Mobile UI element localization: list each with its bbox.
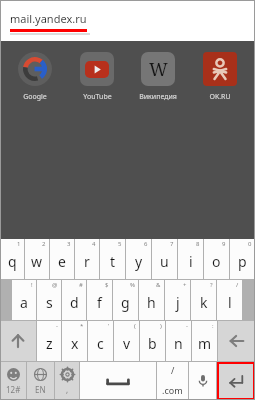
- staticText: 2: [42, 240, 46, 248]
- staticText: s: [46, 293, 53, 312]
- staticText: w: [31, 252, 43, 271]
- button[interactable]: mail.yandex.ru: [0, 0, 255, 41]
- button[interactable]: 9: [204, 239, 229, 279]
- staticText: /: [236, 281, 239, 289]
- staticText: f: [97, 293, 102, 312]
- staticText: 0: [248, 240, 252, 248]
- button[interactable]: 3: [50, 239, 74, 279]
- staticText: 1: [17, 240, 21, 248]
- staticText: 5: [118, 240, 122, 248]
- staticText: !: [31, 281, 33, 289]
- staticText: ): [160, 322, 162, 330]
- staticText: Википедия: [139, 92, 177, 102]
- staticText: (: [134, 322, 136, 330]
- staticText: h: [147, 293, 156, 312]
- staticText: .com: [162, 384, 183, 396]
- button[interactable]: /: [217, 280, 242, 320]
- button[interactable]: ': [88, 321, 113, 361]
- other: Википедия: [141, 52, 175, 86]
- button[interactable]: Space: [80, 362, 156, 400]
- other: Google: [18, 52, 52, 86]
- staticText: Google: [23, 92, 47, 102]
- button[interactable]: $: [87, 280, 112, 320]
- staticText: p: [238, 252, 247, 271]
- button[interactable]: Enter: [219, 364, 253, 398]
- staticText: $: [105, 281, 109, 289]
- button[interactable]: 0: [230, 239, 255, 279]
- button[interactable]: Википедия: [131, 52, 185, 102]
- staticText: -: [56, 322, 58, 330]
- button[interactable]: YouTube: [70, 52, 124, 102]
- staticText: ,: [66, 384, 69, 395]
- button[interactable]: Voice input: [189, 362, 216, 400]
- staticText: &: [156, 281, 161, 289]
- staticText: y: [135, 252, 143, 271]
- button[interactable]: 4: [75, 239, 99, 279]
- staticText: OK.RU: [209, 92, 231, 102]
- staticText: r: [84, 252, 90, 271]
- button[interactable]: *: [62, 321, 87, 361]
- button[interactable]: (: [114, 321, 139, 361]
- staticText: b: [148, 334, 157, 353]
- button[interactable]: +: [165, 280, 190, 320]
- staticText: -: [186, 322, 188, 330]
- staticText: x: [71, 334, 79, 353]
- button[interactable]: OK.RU: [193, 52, 247, 102]
- staticText: EN: [35, 384, 46, 395]
- staticText: ': [108, 322, 110, 330]
- button[interactable]: ): [140, 321, 165, 361]
- staticText: *: [80, 322, 84, 330]
- other: YouTube: [80, 52, 114, 86]
- button[interactable]: !: [12, 280, 36, 320]
- button[interactable]: 2: [25, 239, 49, 279]
- button[interactable]: 1: [0, 239, 24, 279]
- other: OK.RU: [203, 52, 237, 86]
- staticText: ?: [210, 281, 213, 289]
- staticText: 8: [196, 240, 200, 248]
- button[interactable]: &: [139, 280, 164, 320]
- button[interactable]: Settings: [55, 362, 79, 400]
- button[interactable]: 7: [152, 239, 177, 279]
- button[interactable]: -: [166, 321, 191, 361]
- staticText: t: [110, 252, 116, 271]
- staticText: +: [183, 281, 187, 289]
- staticText: W: [149, 57, 168, 82]
- staticText: YouTube: [83, 92, 112, 102]
- button[interactable]: -: [37, 321, 61, 361]
- staticText: mail.yandex.ru: [10, 11, 87, 26]
- button[interactable]: ?: [191, 280, 216, 320]
- staticText: 12#: [6, 384, 21, 395]
- button[interactable]: 8: [178, 239, 203, 279]
- staticText: g: [121, 293, 130, 312]
- staticText: e: [58, 252, 66, 271]
- staticText: i: [189, 252, 193, 271]
- button[interactable]: Emoji: [0, 362, 26, 400]
- staticText: /: [171, 364, 175, 376]
- staticText: n: [174, 334, 183, 353]
- staticText: 6: [144, 240, 148, 248]
- staticText: #: [79, 281, 83, 289]
- button[interactable]: Shift: [0, 321, 36, 361]
- button[interactable]: Language: [27, 362, 54, 400]
- button[interactable]: @: [37, 280, 61, 320]
- staticText: @: [52, 281, 58, 289]
- staticText: 7: [170, 240, 174, 248]
- button[interactable]: %: [113, 280, 138, 320]
- button[interactable]: :: [192, 321, 217, 361]
- button[interactable]: /: [157, 362, 188, 400]
- button[interactable]: 5: [100, 239, 125, 279]
- staticText: j: [176, 293, 180, 312]
- staticText: q: [8, 252, 17, 271]
- button[interactable]: 6: [126, 239, 151, 279]
- button[interactable]: Backspace: [218, 321, 255, 361]
- staticText: u: [160, 252, 169, 271]
- staticText: k: [200, 293, 208, 312]
- staticText: d: [70, 293, 79, 312]
- staticText: 4: [92, 240, 96, 248]
- staticText: a: [20, 293, 28, 312]
- staticText: c: [97, 334, 104, 353]
- button[interactable]: #: [62, 280, 86, 320]
- staticText: 9: [222, 240, 226, 248]
- staticText: v: [123, 334, 131, 353]
- button[interactable]: Google: [8, 52, 62, 102]
